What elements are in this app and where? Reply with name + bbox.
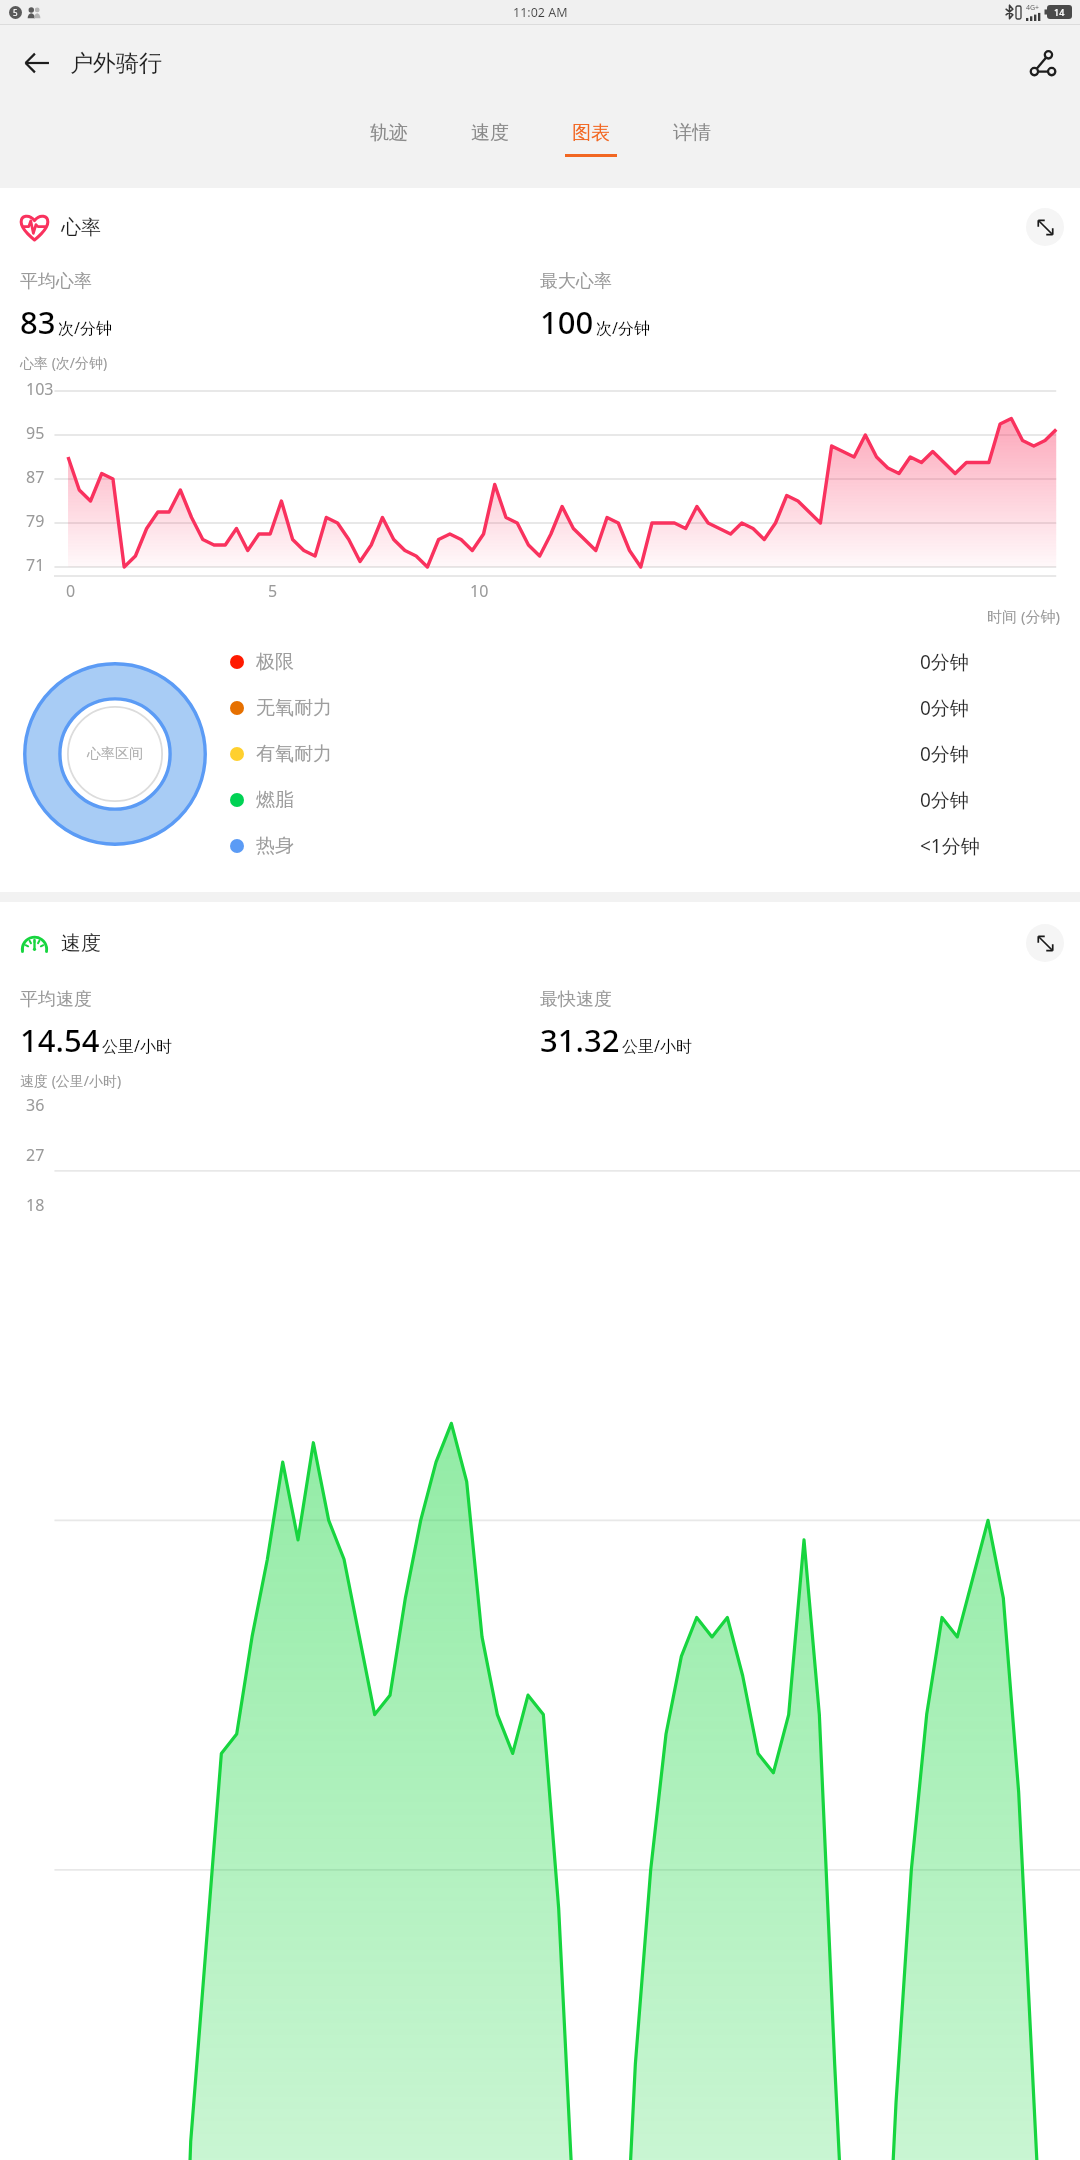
- button[interactable]: 图表: [540, 100, 641, 178]
- staticText: 次/分钟: [58, 317, 112, 339]
- staticText: 平均速度: [20, 988, 92, 1011]
- button[interactable]: Expand 心率 chart: [1026, 208, 1064, 246]
- button[interactable]: 轨迹: [338, 100, 439, 178]
- staticText: 14.54: [20, 1019, 100, 1061]
- staticText: 4G+: [1026, 3, 1040, 13]
- staticText: 速度: [471, 121, 509, 145]
- staticText: 心率: [61, 215, 101, 240]
- staticText: 95: [26, 422, 45, 444]
- staticText: 0: [66, 580, 76, 602]
- staticText: 次/分钟: [596, 317, 650, 339]
- staticText: 轨迹: [370, 121, 408, 145]
- staticText: 0分钟: [920, 787, 969, 813]
- staticText: <1分钟: [920, 833, 980, 859]
- staticText: 83: [20, 301, 56, 343]
- staticText: 热身: [256, 834, 294, 858]
- button[interactable]: Back: [12, 38, 62, 88]
- staticText: 100: [540, 301, 594, 343]
- button[interactable]: 详情: [641, 100, 742, 178]
- staticText: 极限: [256, 650, 294, 674]
- staticText: 87: [26, 466, 45, 488]
- button[interactable]: Expand 速度 chart: [1026, 924, 1064, 962]
- staticText: 心率区间: [87, 745, 143, 763]
- staticText: 0分钟: [920, 649, 969, 675]
- button[interactable]: 热身: [230, 823, 1060, 869]
- staticText: 公里/小时: [622, 1035, 692, 1057]
- staticText: 无氧耐力: [256, 696, 332, 720]
- button[interactable]: 极限: [230, 639, 1060, 685]
- staticText: 79: [26, 510, 45, 532]
- staticText: 速度: [61, 931, 101, 956]
- staticText: 27: [26, 1144, 45, 1166]
- button[interactable]: Share: [1016, 37, 1068, 89]
- staticText: 平均心率: [20, 270, 92, 293]
- button[interactable]: 燃脂: [230, 777, 1060, 823]
- button[interactable]: 无氧耐力: [230, 685, 1060, 731]
- staticText: 0分钟: [920, 741, 969, 767]
- staticText: 速度 (公里/小时): [20, 1071, 122, 1090]
- staticText: 10: [470, 580, 489, 602]
- staticText: 31.32: [540, 1019, 620, 1061]
- button[interactable]: 速度: [439, 100, 540, 178]
- staticText: 心率 (次/分钟): [20, 353, 108, 372]
- staticText: 最快速度: [540, 988, 612, 1011]
- staticText: 户外骑行: [70, 49, 162, 78]
- staticText: 图表: [572, 121, 610, 145]
- staticText: 时间 (分钟): [987, 606, 1060, 626]
- staticText: 0分钟: [920, 695, 969, 721]
- staticText: 有氧耐力: [256, 742, 332, 766]
- staticText: 5: [13, 7, 18, 18]
- staticText: 18: [26, 1194, 45, 1216]
- staticText: 14: [1054, 6, 1065, 18]
- staticText: 燃脂: [256, 788, 294, 812]
- staticText: 11:02 AM: [513, 4, 568, 21]
- staticText: 详情: [673, 121, 711, 145]
- staticText: 36: [26, 1094, 45, 1116]
- staticText: 103: [26, 378, 54, 400]
- staticText: 5: [268, 580, 278, 602]
- staticText: 71: [26, 554, 45, 576]
- staticText: 最大心率: [540, 270, 612, 293]
- button[interactable]: 有氧耐力: [230, 731, 1060, 777]
- staticText: 公里/小时: [102, 1035, 172, 1057]
